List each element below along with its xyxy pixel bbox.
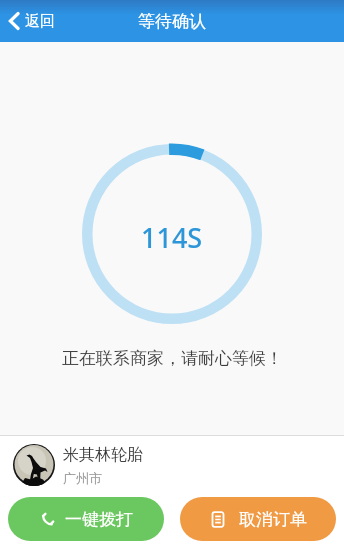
staticText: 正在联系商家，请耐心等候！ [62,348,283,369]
staticText: 等待确认 [138,11,206,32]
staticText: 返回 [25,12,55,31]
button[interactable]: 米其林轮胎 [0,436,344,486]
staticText: 取消订单 [239,509,307,530]
staticText: 米其林轮胎 [63,445,143,465]
button[interactable]: 一键拨打 [8,497,164,541]
button[interactable]: 返回 [0,0,65,42]
staticText: 一键拨打 [65,509,133,530]
button[interactable]: 取消订单 [180,497,336,541]
staticText: 114S [141,219,203,256]
staticText: 广州市 [63,470,102,486]
